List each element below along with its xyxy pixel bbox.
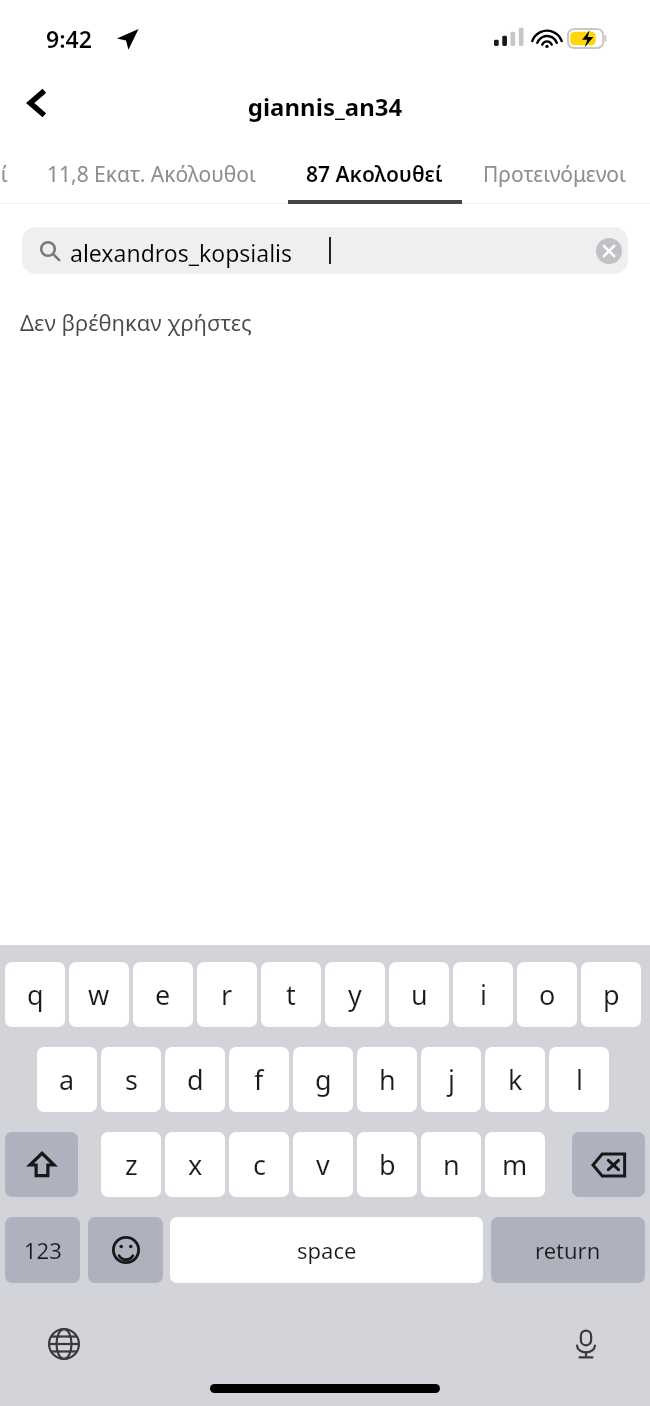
button[interactable]: v	[293, 1132, 353, 1197]
staticText: g	[315, 1061, 332, 1098]
button[interactable]: Shift	[5, 1132, 78, 1197]
button[interactable]: x	[165, 1132, 225, 1197]
button[interactable]: space	[170, 1217, 483, 1283]
button[interactable]: r	[197, 962, 257, 1027]
button[interactable]: Back	[10, 76, 64, 130]
staticText: u	[411, 976, 428, 1013]
staticText: w	[88, 976, 110, 1013]
button[interactable]: o	[517, 962, 577, 1027]
staticText: s	[125, 1061, 138, 1098]
staticText: e	[155, 976, 171, 1013]
button[interactable]: c	[229, 1132, 289, 1197]
button[interactable]: w	[69, 962, 129, 1027]
button[interactable]: Dictate	[560, 1318, 612, 1370]
button[interactable]: q	[5, 962, 65, 1027]
staticText: giannis_an34	[0, 90, 650, 123]
staticText: m	[502, 1146, 528, 1183]
staticText: alexandros_kopsialis	[70, 237, 293, 268]
staticText: p	[603, 976, 620, 1013]
button[interactable]: s	[101, 1047, 161, 1112]
button[interactable]: u	[389, 962, 449, 1027]
staticText: d	[187, 1061, 204, 1098]
button[interactable]: g	[293, 1047, 353, 1112]
button[interactable]: 123	[5, 1217, 80, 1283]
button[interactable]: z	[101, 1132, 161, 1197]
button[interactable]: alexandros_kopsialis	[22, 227, 628, 274]
staticText: z	[125, 1146, 138, 1183]
staticText: k	[508, 1061, 523, 1098]
button[interactable]: f	[229, 1047, 289, 1112]
staticText: 9:42	[46, 23, 92, 54]
button[interactable]: l	[549, 1047, 609, 1112]
staticText: return	[535, 1235, 601, 1265]
staticText: j	[448, 1061, 455, 1098]
staticText: x	[188, 1146, 203, 1183]
button[interactable]: Emoji	[88, 1217, 163, 1283]
button[interactable]: a	[37, 1047, 97, 1112]
button[interactable]: Backspace	[572, 1132, 645, 1197]
button[interactable]: 87 Ακολουθεί	[306, 160, 443, 189]
staticText: q	[27, 976, 44, 1013]
staticText: a	[59, 1061, 75, 1098]
button[interactable]: y	[325, 962, 385, 1027]
staticText: o	[539, 976, 556, 1013]
button[interactable]: b	[357, 1132, 417, 1197]
staticText: t	[286, 976, 296, 1013]
button[interactable]: k	[485, 1047, 545, 1112]
button[interactable]: Change keyboard language	[38, 1318, 90, 1370]
button[interactable]: t	[261, 962, 321, 1027]
staticText: l	[576, 1061, 583, 1098]
staticText: v	[316, 1146, 330, 1183]
staticText: i	[480, 976, 487, 1013]
staticText: h	[379, 1061, 396, 1098]
button[interactable]: p	[581, 962, 641, 1027]
staticText: 123	[24, 1235, 62, 1265]
staticText: space	[297, 1235, 357, 1265]
button[interactable]: Προτεινόμενοι	[483, 160, 626, 189]
staticText: b	[379, 1146, 396, 1183]
button[interactable]: οί	[0, 160, 8, 189]
staticText: c	[253, 1146, 266, 1183]
staticText: y	[348, 976, 362, 1013]
button[interactable]: n	[421, 1132, 481, 1197]
button[interactable]: h	[357, 1047, 417, 1112]
button[interactable]: return	[491, 1217, 645, 1283]
button[interactable]: 11,8 Εκατ. Ακόλουθοι	[47, 160, 256, 189]
button[interactable]: e	[133, 962, 193, 1027]
button[interactable]: m	[485, 1132, 545, 1197]
button[interactable]: i	[453, 962, 513, 1027]
staticText: n	[443, 1146, 460, 1183]
button[interactable]: j	[421, 1047, 481, 1112]
button[interactable]: d	[165, 1047, 225, 1112]
staticText: f	[254, 1061, 264, 1098]
button[interactable]: Clear text	[594, 236, 623, 265]
staticText: Δεν βρέθηκαν χρήστες	[20, 307, 252, 337]
staticText: r	[221, 976, 233, 1013]
